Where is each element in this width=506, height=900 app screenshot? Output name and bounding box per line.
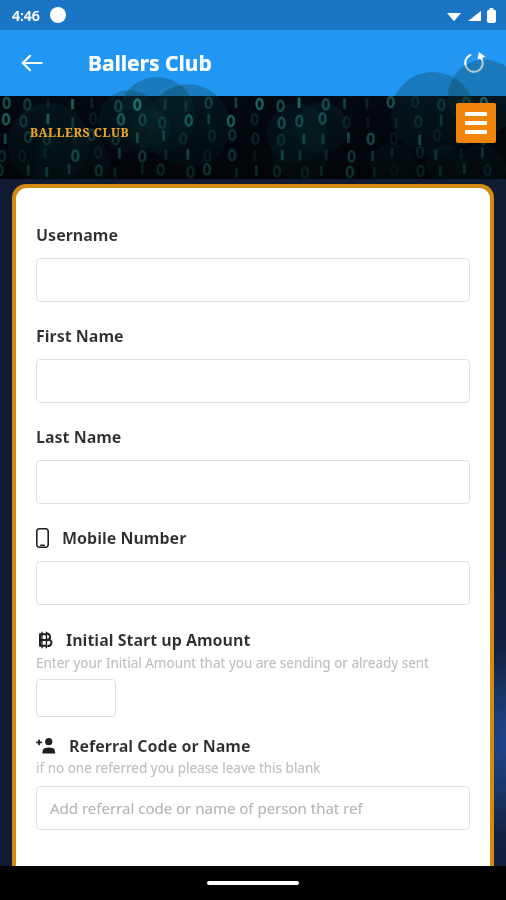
button[interactable]: Back (8, 39, 56, 87)
staticText: Last Name (36, 426, 122, 448)
staticText: Enter your Initial Amount that you are s… (36, 654, 429, 672)
staticText: Referral Code or Name (69, 735, 251, 757)
button[interactable] (36, 460, 470, 504)
button[interactable] (36, 561, 470, 605)
staticText: BALLERS CLUB (30, 124, 130, 140)
button[interactable] (36, 359, 470, 403)
other: Mobile (36, 528, 49, 548)
staticText: Mobile Number (62, 527, 187, 549)
button[interactable]: Menu (456, 103, 496, 143)
button[interactable]: Add referral code or name of person that… (36, 786, 470, 830)
button[interactable] (36, 679, 116, 717)
staticText: Add referral code or name of person that… (50, 798, 363, 818)
button[interactable] (36, 258, 470, 302)
staticText: if no one referred you please leave this… (36, 759, 321, 777)
other: Referral (36, 737, 58, 755)
staticText: 4:46 (12, 6, 40, 25)
staticText: Ballers Club (88, 49, 212, 78)
button[interactable]: Refresh (452, 41, 496, 85)
other: Bitcoin (36, 631, 54, 649)
staticText: Initial Start up Amount (66, 629, 251, 651)
staticText: Username (36, 224, 118, 246)
staticText: First Name (36, 325, 124, 347)
